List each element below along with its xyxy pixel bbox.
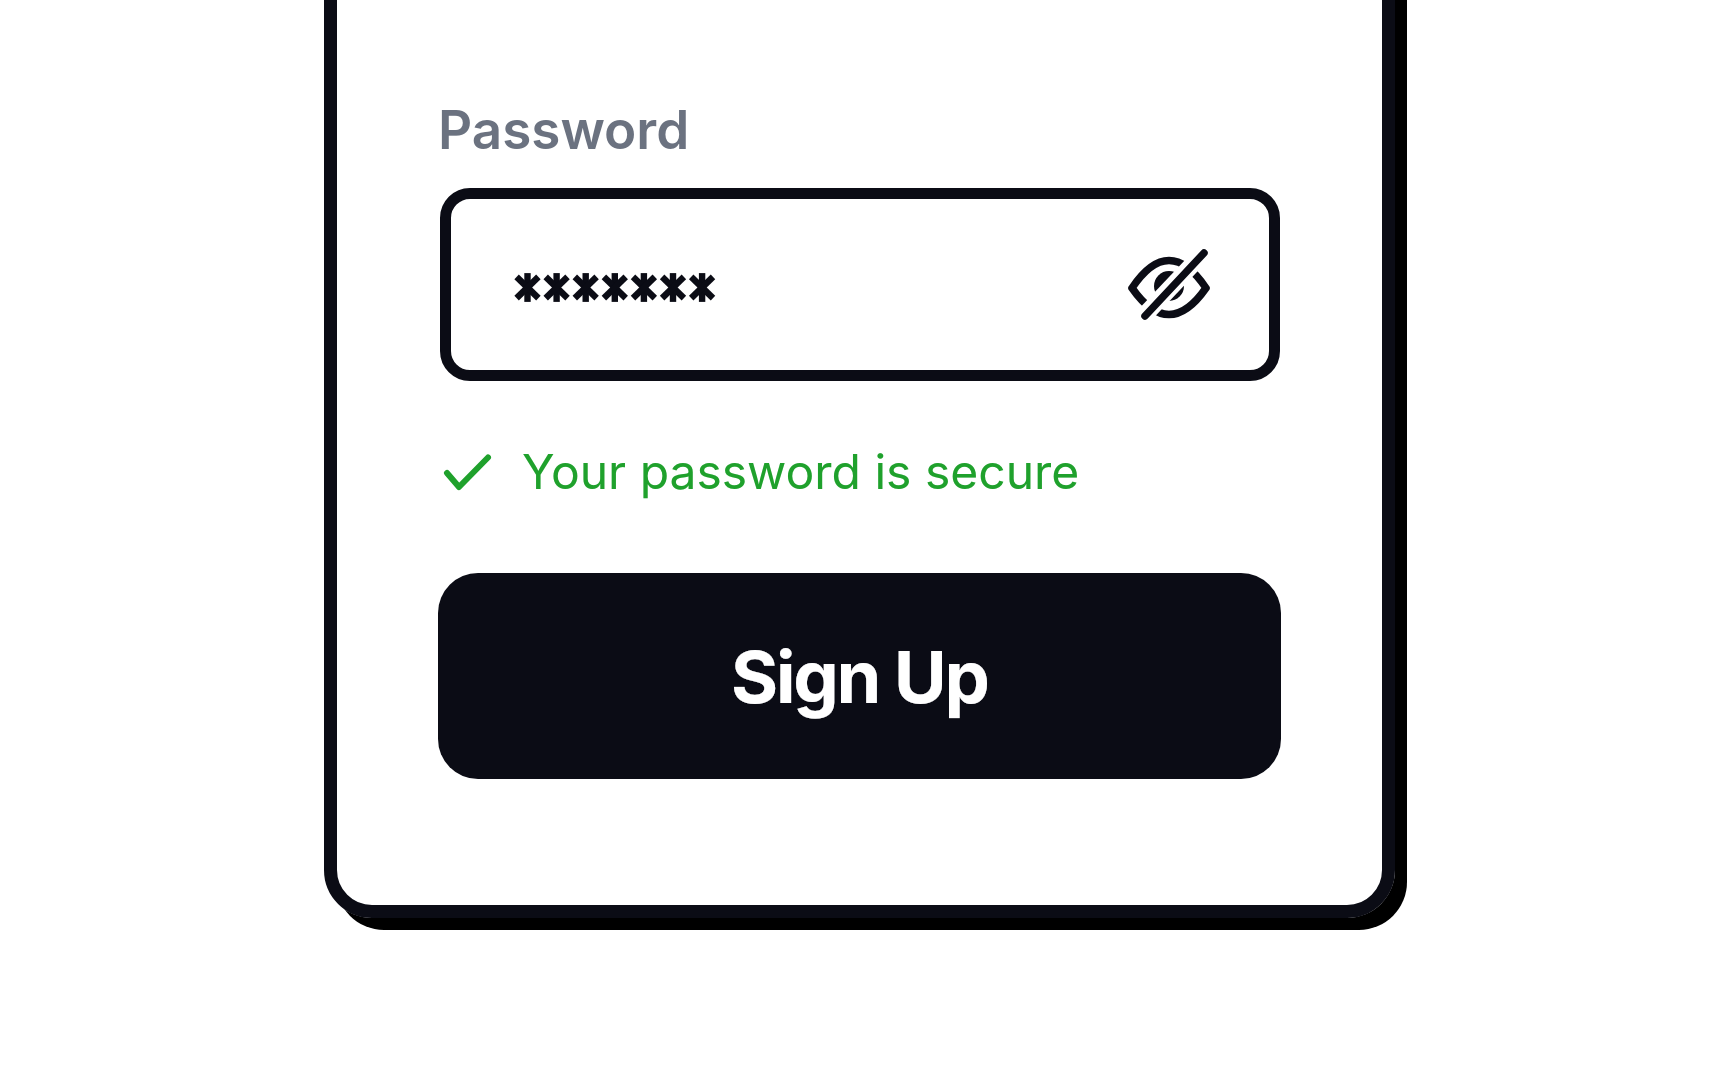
button[interactable]: Sign Up [438, 573, 1281, 779]
button[interactable] [1119, 235, 1219, 335]
staticText: Sign Up [731, 633, 988, 720]
staticText: Password [438, 98, 690, 162]
staticText: Your password is secure [522, 442, 1080, 500]
button[interactable] [440, 188, 1280, 381]
